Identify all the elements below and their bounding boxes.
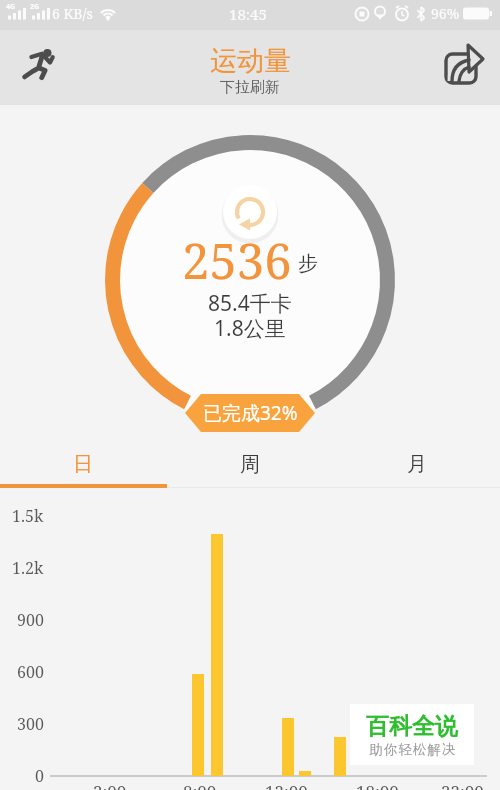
- button[interactable]: 已完成32%: [185, 394, 315, 432]
- staticText: 22:00: [441, 780, 484, 790]
- staticText: 已完成32%: [203, 400, 298, 426]
- staticText: 300: [17, 713, 44, 735]
- staticText: 6 KB/s: [52, 4, 93, 23]
- staticText: 4G: [6, 2, 16, 12]
- button[interactable]: 日: [0, 441, 166, 487]
- button[interactable]: [440, 40, 495, 95]
- staticText: 0: [35, 765, 44, 787]
- staticText: 运动量: [210, 44, 291, 78]
- staticText: 下拉刷新: [220, 78, 280, 97]
- staticText: 1.5k: [12, 505, 44, 527]
- staticText: 96%: [431, 4, 460, 23]
- staticText: 百科全说: [366, 712, 458, 741]
- staticText: 18:45: [229, 4, 267, 24]
- button[interactable]: [14, 39, 60, 85]
- staticText: 步: [298, 251, 318, 276]
- staticText: 2G: [30, 2, 40, 12]
- staticText: 2:00: [93, 780, 127, 790]
- staticText: 8:00: [183, 780, 217, 790]
- staticText: 日: [73, 452, 93, 477]
- staticText: 12:00: [265, 780, 308, 790]
- staticText: 600: [17, 661, 44, 683]
- staticText: 1.2k: [12, 557, 44, 579]
- staticText: 85.4千卡: [208, 289, 292, 318]
- button[interactable]: 月: [333, 441, 500, 487]
- staticText: 900: [17, 609, 44, 631]
- staticText: 助你轻松解决: [369, 741, 456, 758]
- staticText: 月: [407, 452, 427, 477]
- staticText: 18:00: [356, 780, 399, 790]
- button[interactable]: 周: [166, 441, 333, 487]
- staticText: 1.8公里: [214, 314, 286, 343]
- staticText: 2536: [182, 227, 292, 283]
- staticText: 周: [240, 452, 260, 477]
- button[interactable]: 百科全说: [350, 704, 474, 765]
